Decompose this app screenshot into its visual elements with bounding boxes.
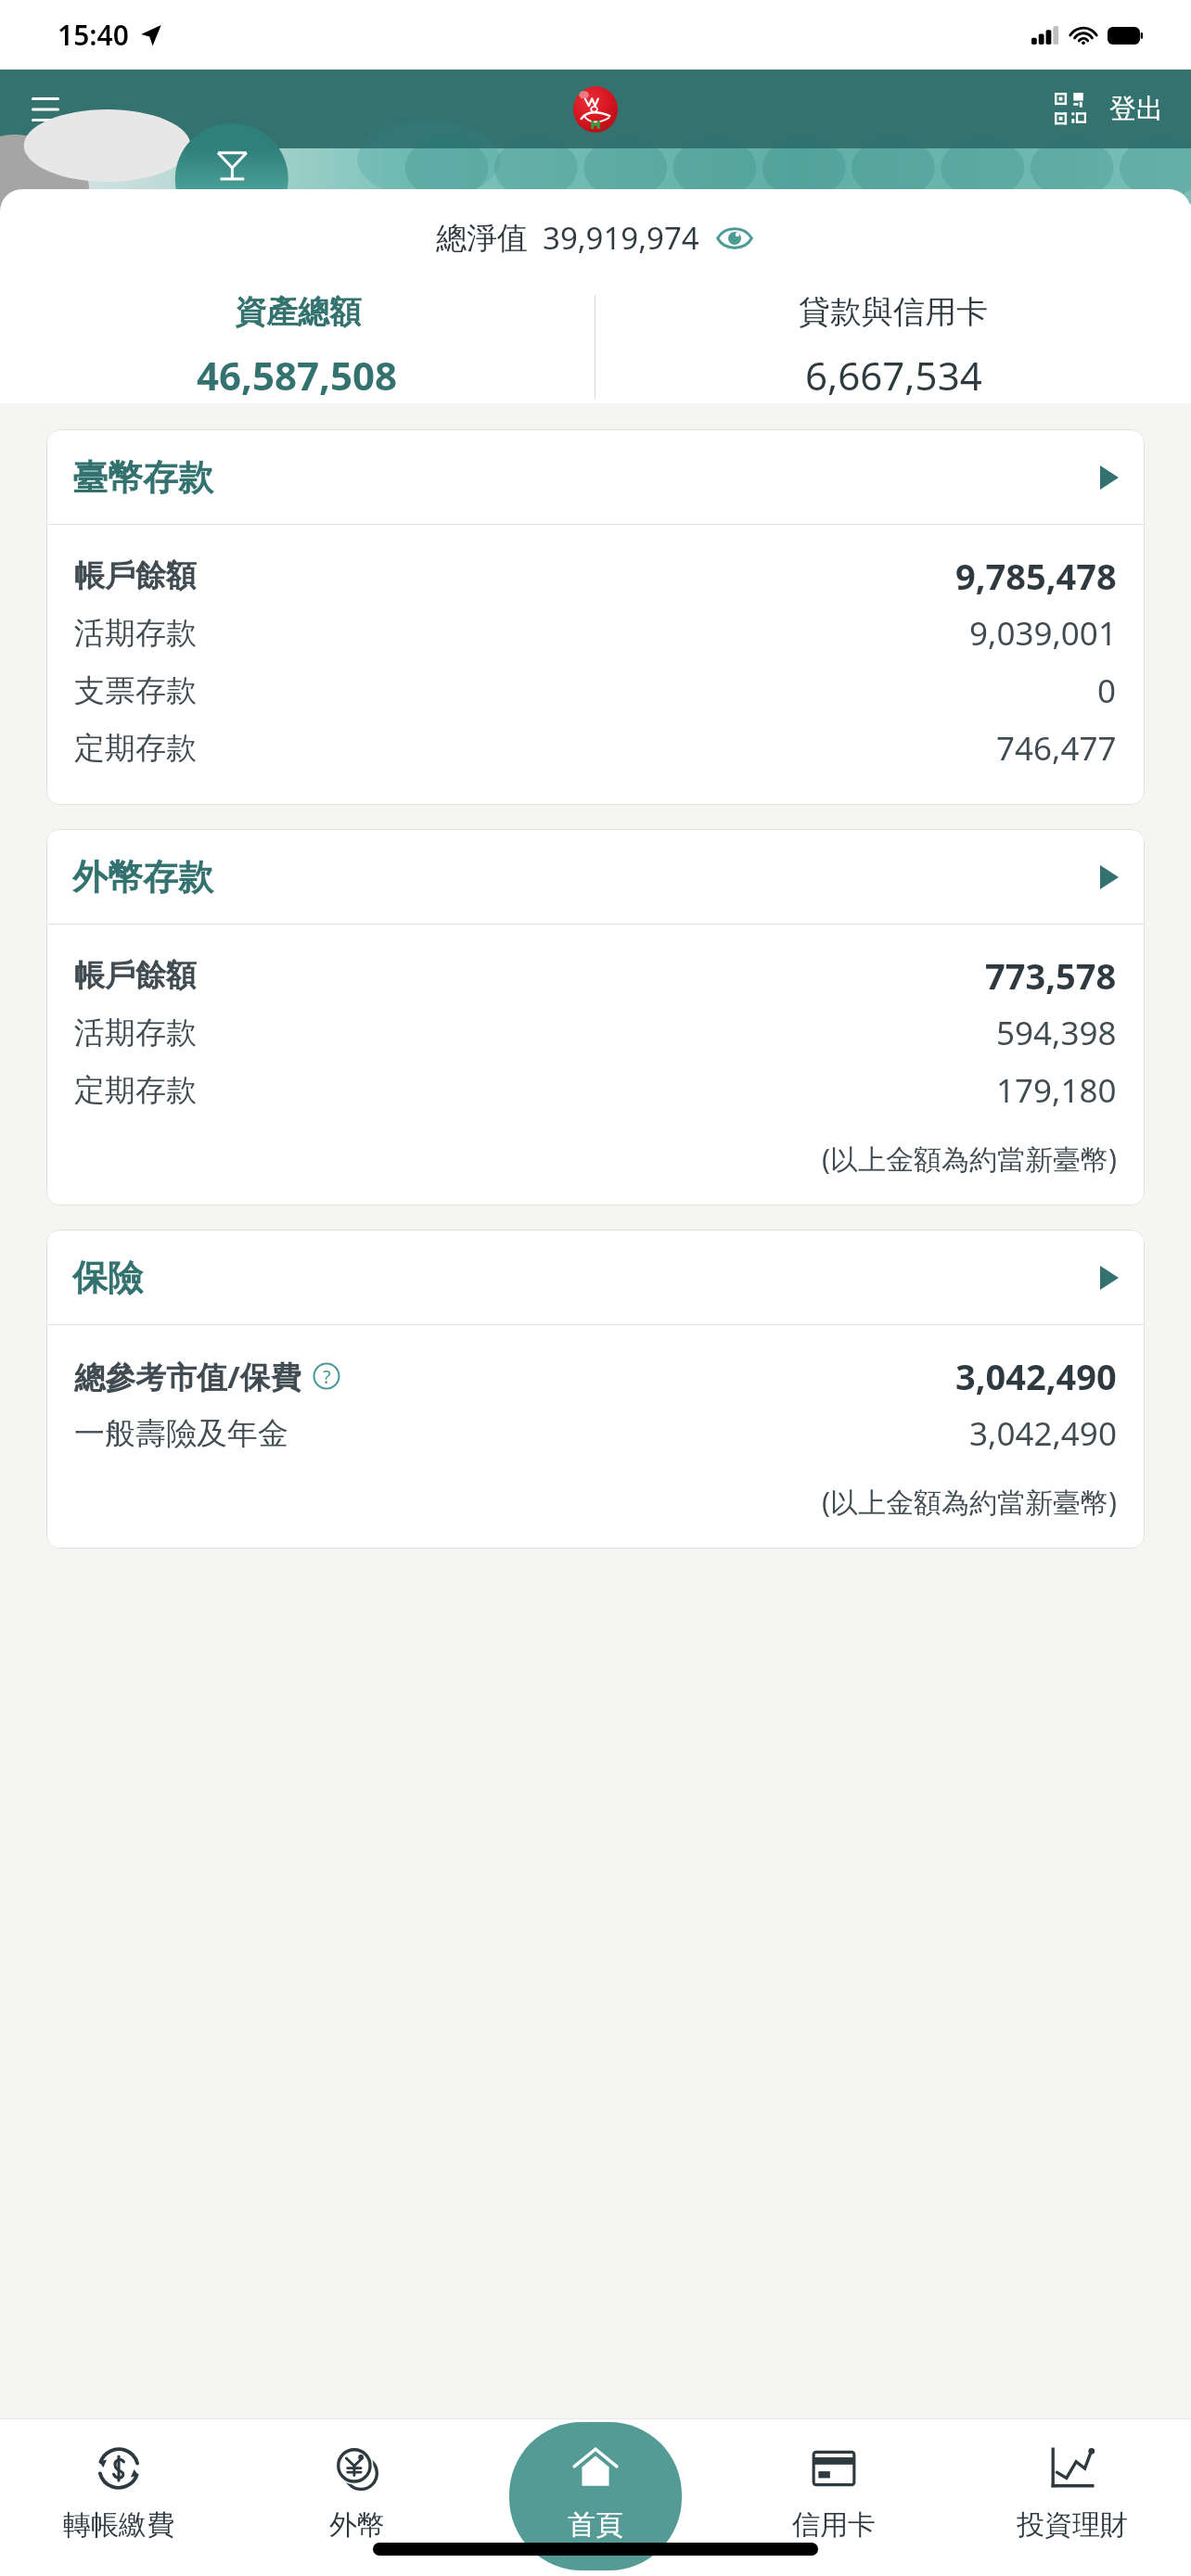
staticText: (以上金額為約當新臺幣) [822,1140,1117,1178]
button[interactable]: Help [311,1360,342,1392]
button[interactable]: Menu [17,81,74,138]
staticText: ? [323,1364,331,1389]
staticText: 746,477 [996,726,1117,771]
staticText: 594,398 [996,1011,1117,1055]
button[interactable]: 轉帳繳費 [0,2418,237,2576]
staticText: 46,587,508 [197,349,398,402]
staticText: 活期存款 [74,1014,197,1052]
button[interactable]: Toggle balance visibility [714,218,755,259]
staticText: 帳戶餘額 [74,556,197,595]
staticText: 資產總額 [235,292,361,332]
button[interactable]: 首頁 [476,2418,714,2576]
button[interactable]: 投資理財 [953,2418,1191,2576]
staticText: 3,042,490 [969,1411,1117,1456]
button[interactable]: 保險 [46,1230,1145,1324]
staticText: 9,785,478 [955,552,1117,600]
staticText: 臺幣存款 [72,455,213,500]
button[interactable]: 外幣存款 [46,829,1145,924]
staticText: 定期存款 [74,1071,197,1110]
staticText: 39,919,974 [543,217,699,259]
staticText: 9,039,001 [969,611,1117,656]
staticText: 保險 [72,1256,143,1300]
staticText: (以上金額為約當新臺幣) [822,1483,1117,1521]
staticText: 支票存款 [74,671,197,710]
button[interactable]: QR code scanner [1050,88,1093,131]
staticText: 帳戶餘額 [74,956,197,995]
button[interactable]: 外幣 [237,2418,476,2576]
staticText: 一般壽險及年金 [74,1414,288,1453]
button[interactable]: 資產總額 [0,290,595,403]
button[interactable]: 登出 [1106,86,1167,132]
staticText: 外幣存款 [72,855,213,899]
staticText: 3,042,490 [955,1352,1117,1400]
button[interactable]: 貸款與信用卡 [595,290,1191,403]
staticText: 773,578 [985,951,1117,1000]
staticText: 外幣 [329,2507,385,2543]
staticText: 總參考市值/保費 [74,1356,301,1397]
staticText: 貸款與信用卡 [799,292,988,332]
button[interactable]: 信用卡 [714,2418,953,2576]
staticText: 轉帳繳費 [63,2507,174,2543]
staticText: 首頁 [568,2507,623,2543]
staticText: 總淨值 [436,219,528,258]
staticText: 信用卡 [792,2507,876,2543]
staticText: 定期存款 [74,729,197,768]
staticText: 0 [1097,669,1117,713]
staticText: 15:40 [58,16,129,54]
staticText: 投資理財 [1017,2507,1128,2543]
staticText: 6,667,534 [805,349,982,402]
staticText: 活期存款 [74,614,197,653]
staticText: 登出 [1109,92,1163,126]
button[interactable]: 臺幣存款 [46,429,1145,524]
staticText: 179,180 [996,1068,1117,1113]
button[interactable]: Bank logo [573,86,618,133]
